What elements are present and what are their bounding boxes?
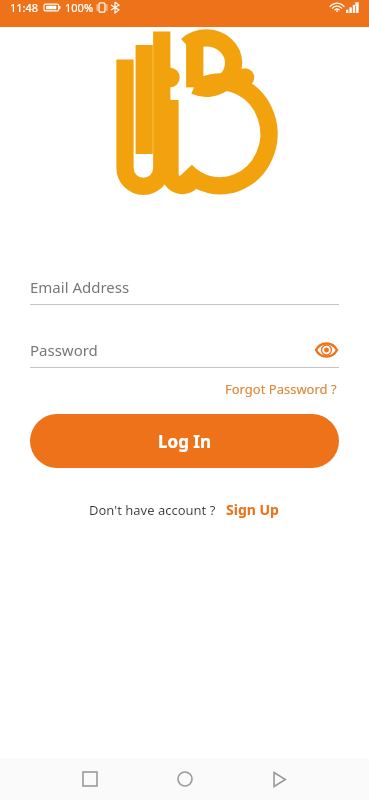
- staticText: 100%: [65, 0, 94, 15]
- staticText: 11:48: [10, 0, 39, 15]
- staticText: Sign Up: [226, 500, 279, 519]
- button[interactable]: Sign Up: [224, 497, 281, 522]
- button[interactable]: Password: [30, 332, 339, 367]
- staticText: Password: [30, 340, 98, 360]
- staticText: Forgot Password ?: [225, 380, 337, 398]
- staticText: Log In: [158, 430, 211, 453]
- button[interactable]: Forgot Password ?: [223, 376, 339, 402]
- button[interactable]: Back: [259, 759, 299, 799]
- button[interactable]: Recent apps: [70, 759, 110, 799]
- button[interactable]: Home: [165, 759, 205, 799]
- button[interactable]: Log In: [30, 414, 339, 468]
- staticText: Email Address: [30, 277, 130, 297]
- staticText: Don't have account ?: [89, 501, 216, 519]
- button[interactable]: Email Address: [30, 269, 339, 304]
- button[interactable]: Show password: [313, 337, 339, 363]
